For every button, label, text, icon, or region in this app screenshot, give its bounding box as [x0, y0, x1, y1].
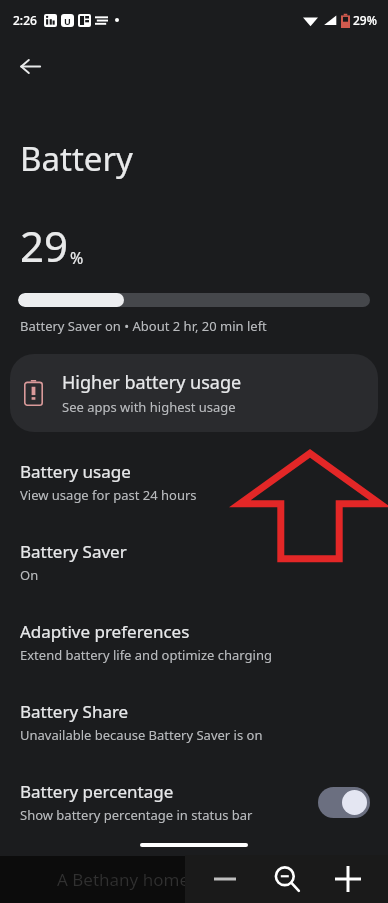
staticText: A Bethany home for you. It's 479,9: [0, 868, 388, 891]
staticText: Unavailable because Battery Saver is on: [20, 726, 263, 744]
staticText: Show battery percentage in status bar: [20, 806, 253, 824]
staticText: 29: [20, 217, 69, 274]
staticText: Battery Share: [20, 700, 129, 723]
button[interactable]: Back: [8, 44, 52, 88]
staticText: Battery percentage: [20, 780, 174, 803]
staticText: On: [20, 566, 39, 584]
button[interactable]: Zoom out minus: [203, 857, 247, 901]
button[interactable]: Battery usage: [0, 446, 388, 518]
staticText: Battery Saver on • About 2 hr, 20 min le…: [20, 317, 267, 335]
staticText: Battery Saver: [20, 540, 127, 563]
staticText: View usage for past 24 hours: [20, 486, 197, 504]
button[interactable]: Zoom: [265, 857, 309, 901]
staticText: U: [64, 15, 71, 27]
button[interactable]: Battery percentage toggle: [318, 787, 370, 818]
button[interactable]: Zoom in plus: [326, 857, 370, 901]
button[interactable]: Battery Share: [0, 686, 388, 758]
staticText: Extend battery life and optimize chargin…: [20, 646, 272, 664]
staticText: 29%: [353, 12, 377, 28]
button[interactable]: Adaptive preferences: [0, 606, 388, 678]
staticText: Battery usage: [20, 460, 131, 483]
staticText: 2:26: [13, 12, 37, 28]
staticText: Adaptive preferences: [20, 620, 190, 643]
staticText: Battery: [20, 136, 133, 181]
staticText: See apps with highest usage: [62, 398, 236, 416]
staticText: %: [70, 247, 84, 269]
button[interactable]: Higher battery usage: [10, 354, 378, 432]
staticText: Higher battery usage: [62, 370, 242, 395]
button[interactable]: Battery Saver: [0, 526, 388, 598]
button[interactable]: Battery percentage: [0, 766, 388, 838]
